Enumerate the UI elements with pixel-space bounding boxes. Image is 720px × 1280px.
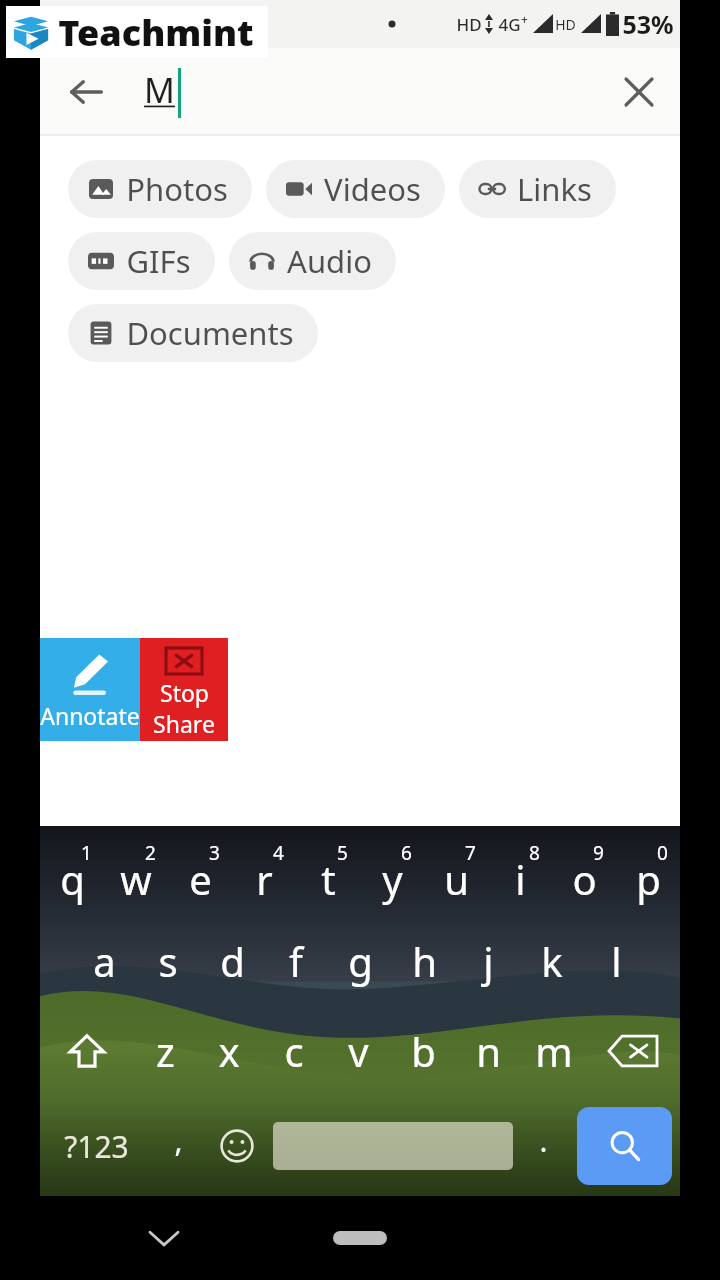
staticText: Links xyxy=(517,168,592,210)
staticText: f xyxy=(289,934,303,988)
button[interactable]: x xyxy=(197,1006,261,1096)
staticText: z xyxy=(156,1024,175,1078)
button[interactable]: b xyxy=(391,1006,456,1096)
button[interactable]: s xyxy=(136,916,200,1006)
button[interactable]: Back xyxy=(54,60,118,124)
staticText: w xyxy=(120,852,152,906)
staticText: . xyxy=(539,1120,548,1161)
button[interactable]: Shift xyxy=(40,1006,133,1096)
staticText: 7 xyxy=(465,840,476,866)
staticText: , xyxy=(174,1120,183,1161)
staticText: 53% xyxy=(622,7,674,41)
staticText: t xyxy=(321,852,336,906)
staticText: y xyxy=(382,852,403,906)
button[interactable]: Backspace xyxy=(586,1006,680,1096)
button[interactable]: Search xyxy=(577,1107,672,1185)
staticText: j xyxy=(483,934,494,988)
button[interactable]: 4 xyxy=(232,826,296,916)
staticText: 1 xyxy=(81,840,92,866)
staticText: Documents xyxy=(126,312,294,354)
button[interactable]: Photos xyxy=(68,160,252,218)
button[interactable]: 1 xyxy=(40,826,104,916)
button[interactable]: Videos xyxy=(266,160,445,218)
staticText: ?123 xyxy=(64,1126,129,1167)
staticText: g xyxy=(348,934,373,988)
button[interactable]: Links xyxy=(459,160,616,218)
staticText: v xyxy=(348,1024,369,1078)
button[interactable]: 8 xyxy=(488,826,552,916)
button[interactable]: Audio xyxy=(229,232,396,290)
staticText: m xyxy=(535,1024,573,1078)
button[interactable]: g xyxy=(328,916,392,1006)
staticText: h xyxy=(412,934,437,988)
button[interactable]: m xyxy=(521,1006,586,1096)
staticText: n xyxy=(476,1024,501,1078)
button[interactable]: a xyxy=(72,916,136,1006)
button[interactable]: 3 xyxy=(168,826,232,916)
staticText: e xyxy=(189,852,212,906)
button[interactable]: n xyxy=(456,1006,521,1096)
button[interactable]: Documents xyxy=(68,304,318,362)
button[interactable]: 7 xyxy=(424,826,488,916)
staticText: i xyxy=(515,852,526,906)
staticText: Share xyxy=(153,708,215,739)
button[interactable]: f xyxy=(264,916,328,1006)
button[interactable]: k xyxy=(520,916,584,1006)
staticText: Photos xyxy=(126,168,228,210)
staticText: 0 xyxy=(657,840,668,866)
staticText: 8 xyxy=(529,840,540,866)
button[interactable]: GIFs xyxy=(68,232,215,290)
button[interactable]: l xyxy=(584,916,648,1006)
staticText: GIFs xyxy=(126,240,191,282)
staticText: d xyxy=(220,934,245,988)
button[interactable]: Stop xyxy=(140,638,228,741)
button[interactable]: 0 xyxy=(616,826,680,916)
staticText: + xyxy=(521,11,528,27)
staticText: 5 xyxy=(337,840,348,866)
button[interactable]: . xyxy=(517,1096,569,1196)
staticText: s xyxy=(158,934,178,988)
staticText: b xyxy=(411,1024,436,1078)
staticText: q xyxy=(60,852,85,906)
staticText: Audio xyxy=(287,240,372,282)
button[interactable]: 9 xyxy=(552,826,616,916)
button[interactable]: 2 xyxy=(104,826,168,916)
staticText: u xyxy=(444,852,469,906)
button[interactable]: 5 xyxy=(296,826,360,916)
staticText: 2 xyxy=(145,840,156,866)
staticText: HD xyxy=(555,15,576,34)
staticText: HD xyxy=(456,13,482,36)
staticText: r xyxy=(256,852,273,906)
staticText: o xyxy=(572,852,597,906)
button[interactable]: Home xyxy=(333,1231,387,1245)
button[interactable]: v xyxy=(326,1006,391,1096)
button[interactable]: Emoji xyxy=(204,1096,269,1196)
button[interactable]: , xyxy=(152,1096,204,1196)
staticText: 3 xyxy=(209,840,220,866)
button[interactable]: Clear search xyxy=(610,63,668,121)
staticText: 9 xyxy=(593,840,604,866)
button[interactable]: Space xyxy=(273,1122,513,1170)
staticText: l xyxy=(611,934,622,988)
staticText: p xyxy=(636,852,661,906)
button[interactable]: 6 xyxy=(360,826,424,916)
staticText: Videos xyxy=(324,168,421,210)
button[interactable]: Annotate xyxy=(40,638,140,741)
button[interactable]: j xyxy=(456,916,520,1006)
staticText: x xyxy=(218,1024,240,1078)
staticText: Stop xyxy=(160,677,209,708)
button[interactable]: Hide keyboard xyxy=(132,1206,196,1270)
staticText: k xyxy=(541,934,563,988)
staticText: 4G xyxy=(498,13,521,36)
button[interactable]: d xyxy=(200,916,264,1006)
staticText: Annotate xyxy=(40,700,140,731)
button[interactable]: h xyxy=(392,916,456,1006)
button[interactable]: ?123 xyxy=(40,1096,152,1196)
staticText: c xyxy=(284,1024,304,1078)
staticText: Teachmint xyxy=(58,8,254,57)
staticText: a xyxy=(93,934,116,988)
button[interactable]: z xyxy=(133,1006,197,1096)
staticText: 6 xyxy=(401,840,412,866)
staticText: M xyxy=(144,67,175,113)
button[interactable]: c xyxy=(261,1006,326,1096)
